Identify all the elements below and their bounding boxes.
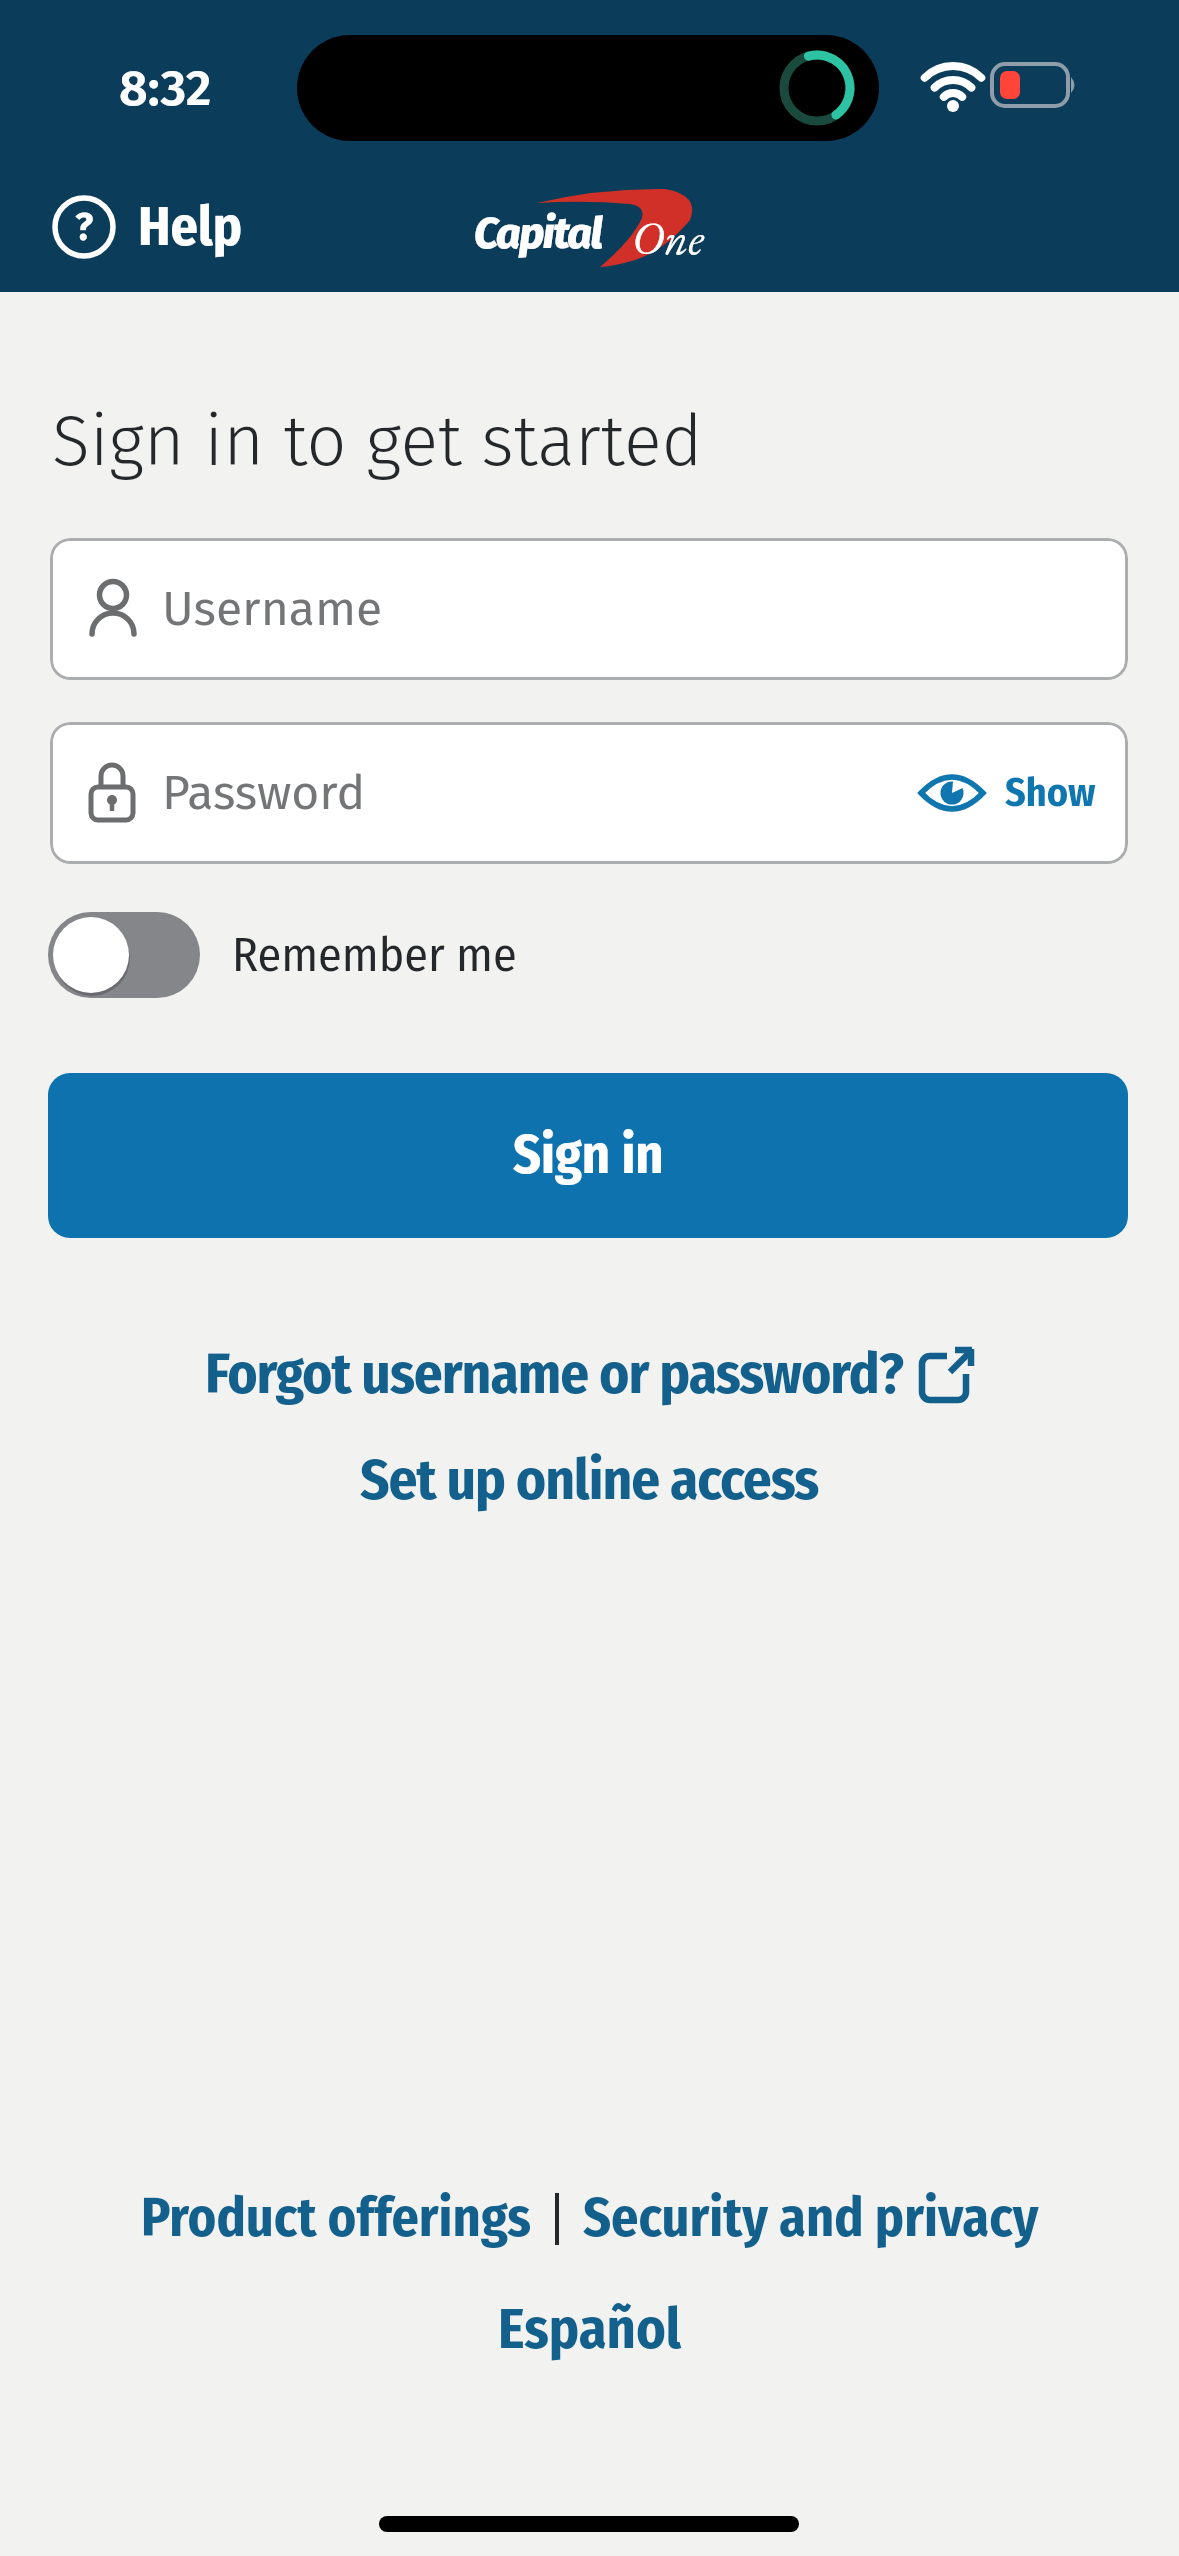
button[interactable] xyxy=(48,912,200,998)
staticText: Password xyxy=(162,764,366,822)
button[interactable]: Forgot username or password? xyxy=(0,1340,1179,1408)
staticText: Help xyxy=(138,195,242,260)
staticText: Show xyxy=(1005,769,1096,817)
button[interactable]: Security and privacy xyxy=(583,2186,1039,2251)
staticText: ? xyxy=(75,204,94,250)
button[interactable]: Set up online access xyxy=(0,1446,1179,1514)
button[interactable]: Username xyxy=(50,538,1128,680)
staticText: Forgot username or password? xyxy=(205,1340,903,1408)
staticText: Product offerings xyxy=(141,2186,531,2251)
button[interactable]: Product offerings xyxy=(141,2186,531,2251)
staticText: Sign in to get started xyxy=(52,400,703,484)
button[interactable]: Sign in xyxy=(48,1073,1128,1238)
staticText: Remember me xyxy=(232,926,517,984)
staticText: Español xyxy=(498,2296,682,2363)
staticText: Security and privacy xyxy=(583,2186,1039,2251)
staticText: One xyxy=(632,208,704,268)
staticText: Set up online access xyxy=(360,1446,819,1514)
button[interactable]: Español xyxy=(0,2296,1179,2363)
button[interactable]: ? xyxy=(52,192,242,262)
button[interactable]: Password xyxy=(50,722,1128,864)
button[interactable]: Show xyxy=(919,769,1096,817)
staticText: 8:32 xyxy=(119,58,212,118)
staticText: Sign in xyxy=(513,1123,664,1188)
staticText: Capital xyxy=(474,208,602,260)
staticText: Username xyxy=(162,580,383,638)
